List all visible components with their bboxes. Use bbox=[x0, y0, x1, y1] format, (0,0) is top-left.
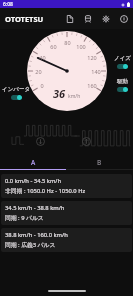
button[interactable]: 駆動 bbox=[117, 78, 128, 92]
staticText: 100 bbox=[76, 43, 86, 50]
staticText: 6:08 bbox=[3, 1, 13, 8]
staticText: 40 bbox=[39, 54, 46, 61]
button[interactable]: Train bbox=[81, 12, 94, 25]
staticText: 140 bbox=[91, 68, 101, 75]
staticText: A bbox=[31, 158, 36, 167]
staticText: km/h bbox=[68, 93, 81, 100]
staticText: 同期 : 広義3 パルス bbox=[5, 241, 56, 249]
button[interactable]: Toggle bbox=[117, 87, 128, 92]
staticText: 非同期 : 1050.0 Hz - 1050.0 Hz bbox=[5, 187, 86, 195]
button[interactable]: 0.0 km/h - 34.5 km/h bbox=[1, 174, 132, 198]
button[interactable]: Toggle bbox=[117, 64, 128, 69]
button[interactable]: 38.8 km/h - 160.0 km/h bbox=[1, 228, 132, 252]
staticText: B bbox=[97, 158, 102, 167]
staticText: インバータ bbox=[2, 86, 31, 93]
staticText: 駆動 bbox=[117, 78, 128, 85]
staticText: 160 bbox=[87, 82, 97, 89]
staticText: 同期 : 9 パルス bbox=[5, 214, 44, 222]
button[interactable]: B bbox=[66, 155, 133, 169]
button[interactable]: Document bbox=[63, 12, 76, 25]
staticText: 60 bbox=[50, 43, 57, 50]
staticText: 80 bbox=[64, 39, 71, 46]
staticText: 120 bbox=[87, 54, 97, 61]
staticText: 34.5 km/h - 38.8 km/h bbox=[5, 204, 65, 212]
button[interactable]: Toggle bbox=[11, 95, 22, 100]
staticText: OTOTETSU bbox=[5, 14, 44, 24]
staticText: 0.0 km/h - 34.5 km/h bbox=[5, 177, 62, 185]
button[interactable]: Settings bbox=[99, 12, 112, 25]
button[interactable]: Marker A bbox=[36, 137, 45, 146]
button[interactable]: ノイズ bbox=[114, 55, 131, 69]
button[interactable]: Speedometer 36 km/h bbox=[27, 31, 107, 111]
button[interactable]: A bbox=[0, 155, 66, 169]
button[interactable]: 34.5 km/h - 38.8 km/h bbox=[1, 201, 132, 225]
staticText: 20 bbox=[35, 68, 42, 75]
staticText: 36 bbox=[53, 86, 66, 101]
staticText: ノイズ bbox=[114, 55, 131, 62]
button[interactable]: インバータ bbox=[2, 86, 31, 100]
staticText: 38.8 km/h - 160.0 km/h bbox=[5, 231, 68, 239]
button[interactable]: Marker B bbox=[82, 137, 91, 146]
staticText: 0 bbox=[40, 82, 44, 89]
button[interactable]: Info bbox=[117, 12, 130, 25]
